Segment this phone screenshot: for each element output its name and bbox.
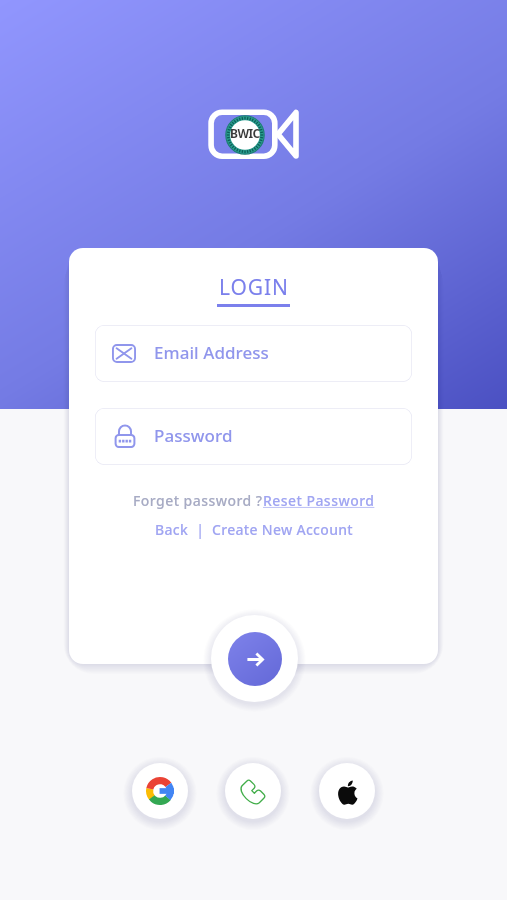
button[interactable]: Email Address: [95, 325, 412, 382]
button[interactable]: Sign in with phone: [225, 763, 281, 819]
staticText: LOGIN: [219, 273, 289, 302]
staticText: |: [189, 520, 212, 539]
staticText: Forget password ?: [133, 491, 263, 510]
button[interactable]: Create New Account: [212, 520, 353, 539]
staticText: Email Address: [154, 341, 269, 364]
button[interactable]: Submit: [228, 632, 282, 686]
staticText: Back: [155, 520, 189, 539]
staticText: Password: [154, 424, 233, 447]
button[interactable]: Sign in with Apple: [319, 763, 375, 819]
staticText: BWIC: [230, 125, 260, 141]
button[interactable]: Reset Password: [263, 491, 375, 510]
staticText: Create New Account: [212, 520, 353, 539]
button[interactable]: Password: [95, 408, 412, 465]
button[interactable]: Sign in with Google: [132, 763, 188, 819]
button[interactable]: Back: [155, 520, 189, 539]
staticText: Reset Password: [263, 491, 375, 510]
